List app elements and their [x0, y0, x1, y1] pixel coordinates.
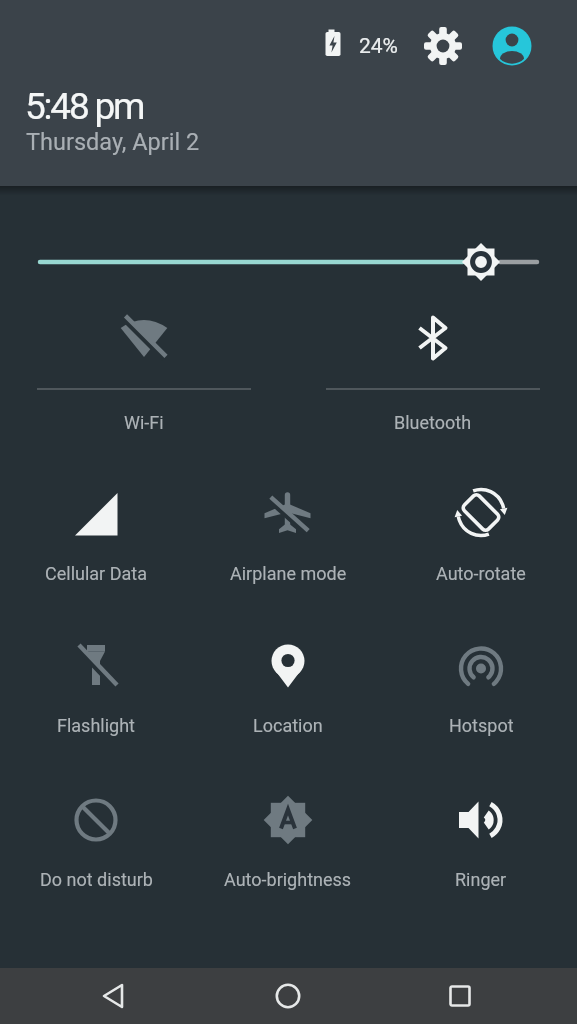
button[interactable]: Hotspot	[391, 642, 571, 764]
staticText: Bluetooth	[394, 412, 472, 433]
button[interactable]: Cellular Data	[6, 490, 186, 612]
staticText: Flashlight	[57, 715, 135, 736]
staticText: Auto-rotate	[436, 563, 526, 584]
button[interactable]: Location	[198, 642, 378, 764]
staticText: Ringer	[455, 869, 507, 890]
staticText: Wi-Fi	[124, 412, 164, 433]
staticText: 24%	[359, 34, 398, 59]
staticText: Airplane mode	[230, 563, 347, 584]
button[interactable]	[89, 972, 137, 1020]
staticText: Location	[253, 715, 323, 736]
button[interactable]: Flashlight	[6, 642, 186, 764]
button[interactable]	[436, 972, 484, 1020]
button[interactable]	[424, 27, 462, 65]
button[interactable]: Airplane mode	[198, 490, 378, 612]
button[interactable]: Wi-Fi	[36, 314, 252, 436]
staticText: Thursday, April 2	[26, 128, 200, 156]
staticText: Hotspot	[449, 715, 514, 736]
staticText: 5:48 pm	[25, 85, 144, 128]
staticText: Do not disturb	[40, 869, 153, 890]
button[interactable]: Auto-brightness	[198, 796, 378, 918]
staticText: Auto-brightness	[224, 869, 352, 890]
staticText: Cellular Data	[45, 563, 147, 584]
button[interactable]	[492, 26, 532, 66]
button[interactable]	[30, 239, 547, 285]
button[interactable]: Do not disturb	[6, 796, 186, 918]
button[interactable]: Bluetooth	[325, 314, 541, 436]
button[interactable]	[264, 972, 312, 1020]
button[interactable]: Auto-rotate	[391, 490, 571, 612]
button[interactable]: Ringer	[391, 796, 571, 918]
